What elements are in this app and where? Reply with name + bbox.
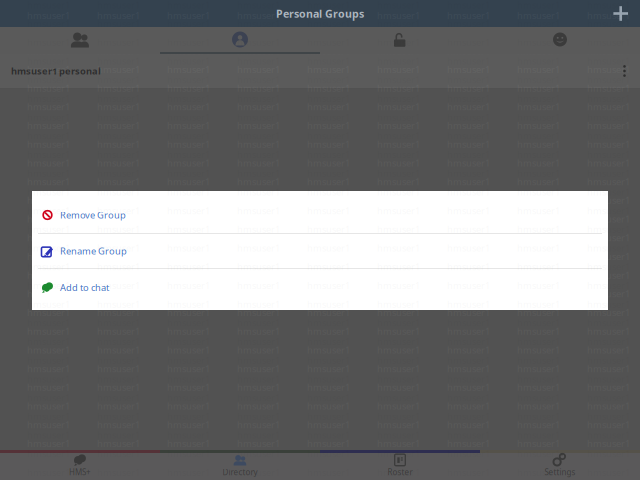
staticText: hmsuser1 [307, 260, 350, 273]
staticText: hmsuser1 [97, 215, 140, 227]
staticText: hmsuser1 [447, 223, 490, 235]
staticText: hmsuser1 [27, 439, 70, 452]
staticText: hmsuser1 [587, 84, 630, 96]
button[interactable]: hmsuser1 personal [0, 54, 640, 88]
staticText: hmsuser1 [167, 306, 210, 319]
staticText: hmsuser1 [377, 447, 420, 460]
staticText: hmsuser1 [307, 9, 350, 22]
button[interactable]: Personal groups [160, 27, 320, 54]
staticText: hmsuser1 [587, 63, 630, 76]
staticText: hmsuser1 [307, 17, 350, 30]
staticText: hmsuser1 [237, 466, 280, 479]
staticText: hmsuser1 personal [11, 65, 101, 77]
staticText: hmsuser1 [517, 458, 560, 470]
staticText: hmsuser1 [27, 17, 70, 30]
staticText: hmsuser1 [237, 439, 280, 452]
staticText: hmsuser1 [587, 308, 630, 321]
button[interactable]: HMS+ [0, 450, 160, 480]
button[interactable]: Private groups [320, 27, 480, 54]
staticText: hmsuser1 [447, 260, 490, 273]
button[interactable]: Remove Group [32, 194, 608, 236]
button[interactable]: Settings [480, 450, 640, 480]
staticText: hmsuser1 [447, 231, 490, 244]
staticText: hmsuser1 [587, 298, 630, 310]
button[interactable]: Rename Group [32, 233, 608, 269]
button[interactable]: Favourites [480, 27, 640, 54]
button[interactable]: Roster [320, 450, 480, 480]
button[interactable]: New group [605, 1, 636, 26]
staticText: hmsuser1 [237, 9, 280, 22]
staticText: hmsuser1 [587, 213, 630, 225]
staticText: hmsuser1 [587, 196, 630, 209]
button[interactable]: Add to chat [32, 267, 608, 308]
staticText: hmsuser1 [377, 17, 420, 30]
button[interactable]: Contacts [0, 27, 160, 54]
staticText: Add to chat [60, 281, 109, 294]
staticText: hmsuser1 [447, 439, 490, 452]
staticText: hmsuser1 [27, 279, 70, 292]
staticText: hmsuser1 [587, 271, 630, 283]
button[interactable]: Directory [160, 450, 320, 480]
staticText: hmsuser1 [587, 269, 630, 281]
